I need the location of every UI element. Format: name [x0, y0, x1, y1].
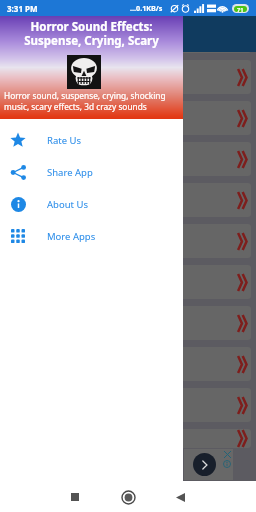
- button[interactable]: More Apps: [0, 220, 183, 252]
- button[interactable]: Open ad: [193, 453, 216, 476]
- button[interactable]: Back: [168, 485, 192, 509]
- button[interactable]: Home: [116, 485, 140, 509]
- staticText: About Us: [47, 198, 88, 211]
- staticText: Horror sound, suspense, crying, shocking…: [4, 90, 187, 112]
- button[interactable]: Recents: [63, 485, 87, 509]
- button[interactable]: [5, 142, 251, 176]
- button[interactable]: [5, 265, 251, 299]
- staticText: More Apps: [47, 230, 96, 243]
- button[interactable]: [5, 52, 251, 53]
- button[interactable]: Rate Us: [0, 124, 183, 156]
- button[interactable]: Close ad: [224, 451, 231, 458]
- button[interactable]: [5, 429, 251, 448]
- button[interactable]: [5, 224, 251, 258]
- staticText: ...0.1KB/s: [130, 3, 163, 13]
- button[interactable]: [5, 388, 251, 422]
- staticText: 71: [237, 6, 244, 12]
- button[interactable]: [5, 60, 251, 94]
- staticText: 3:31 PM: [7, 3, 38, 14]
- staticText: Horror Sound Effects: Suspense, Crying, …: [0, 19, 183, 48]
- button[interactable]: [5, 101, 251, 135]
- staticText: Share App: [47, 166, 93, 179]
- button[interactable]: About Us: [0, 188, 183, 220]
- staticText: Rate Us: [47, 134, 81, 147]
- button[interactable]: [5, 347, 251, 381]
- button[interactable]: [5, 183, 251, 217]
- button[interactable]: [5, 306, 251, 340]
- button[interactable]: Share App: [0, 156, 183, 188]
- button[interactable]: Ad info: [223, 460, 231, 468]
